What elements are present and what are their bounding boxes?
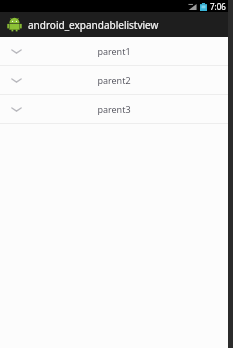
other: App icon xyxy=(7,17,22,32)
other: Expand group xyxy=(11,77,22,84)
staticText: parent3 xyxy=(32,103,196,115)
other: Expand group xyxy=(11,106,22,113)
button[interactable]: Expand group xyxy=(0,66,228,94)
other: Expand group xyxy=(11,48,22,55)
button[interactable]: Expand group xyxy=(0,37,228,65)
staticText: parent2 xyxy=(32,74,196,86)
staticText: 7:06 xyxy=(210,1,226,12)
staticText: parent1 xyxy=(32,45,196,57)
button[interactable]: Expand group xyxy=(0,95,228,123)
staticText: android_expandablelistview xyxy=(28,18,159,32)
